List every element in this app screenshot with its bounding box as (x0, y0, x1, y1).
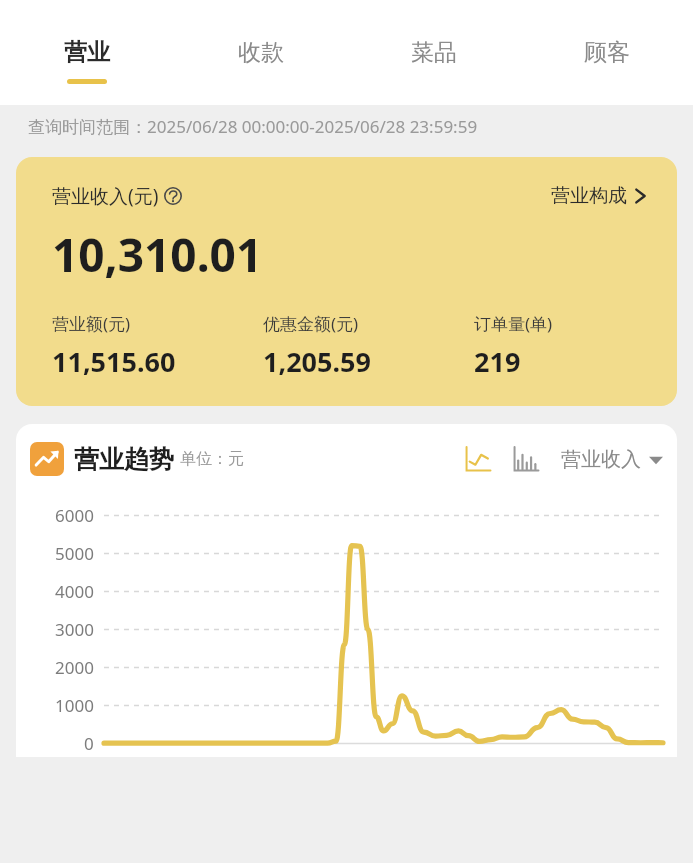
button[interactable]: 营业 (0, 0, 174, 105)
button[interactable]: 顾客 (520, 0, 693, 105)
button[interactable]: 收款 (174, 0, 347, 105)
staticText: 219 (474, 343, 521, 380)
button[interactable]: 营业收入(元) (16, 157, 677, 406)
staticText: 营业构成 (551, 184, 627, 208)
staticText: 营业收入(元) (52, 183, 159, 209)
staticText: 2000 (55, 656, 94, 679)
staticText: 单位：元 (180, 449, 244, 469)
button[interactable]: 菜品 (347, 0, 520, 105)
staticText: 1,205.59 (263, 343, 371, 380)
staticText: 优惠金额(元) (263, 312, 359, 335)
staticText: 营业趋势 (74, 444, 174, 475)
staticText: 3000 (55, 618, 94, 641)
staticText: 查询时间范围：2025/06/28 00:00:00-2025/06/28 23… (28, 115, 478, 138)
staticText: 营业额(元) (52, 312, 131, 335)
staticText: 10,310.01 (52, 223, 263, 286)
staticText: 营业收入 (561, 447, 641, 472)
staticText: 菜品 (411, 38, 457, 67)
button[interactable]: 营业构成 (551, 184, 647, 208)
button[interactable]: Bar chart (509, 442, 543, 476)
staticText: 11,515.60 (52, 343, 176, 380)
staticText: 4000 (55, 580, 94, 603)
staticText: 5000 (55, 542, 94, 565)
staticText: 营业 (64, 38, 110, 67)
staticText: 0 (84, 732, 94, 755)
button[interactable]: 营业收入 (561, 447, 663, 472)
staticText: 订单量(单) (474, 312, 553, 335)
staticText: 1000 (55, 694, 94, 717)
staticText: 6000 (55, 504, 94, 527)
staticText: 顾客 (584, 38, 630, 67)
button[interactable]: Line chart (461, 442, 495, 476)
staticText: 收款 (238, 38, 284, 67)
